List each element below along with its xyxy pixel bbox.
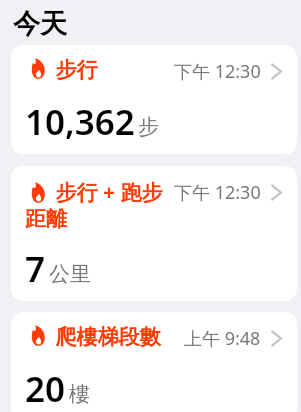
staticText: *步行 + 跑步 距離: [25, 178, 170, 233]
staticText: 7: [25, 245, 46, 293]
staticText: 步: [138, 114, 159, 140]
staticText: 10,362: [25, 98, 135, 146]
button[interactable]: *步行: [11, 45, 297, 154]
staticText: 樓: [69, 381, 90, 407]
staticText: 上午 9:48: [184, 326, 261, 351]
staticText: 下午 12:30: [174, 180, 261, 205]
staticText: 今天: [13, 7, 67, 41]
button[interactable]: *爬樓梯段數: [11, 312, 297, 412]
staticText: 下午 12:30: [174, 59, 261, 84]
staticText: 公里: [49, 261, 91, 287]
staticText: *爬樓梯段數: [25, 324, 180, 350]
staticText: 20: [25, 365, 66, 412]
other: Show details: [270, 183, 283, 202]
staticText: *步行: [25, 57, 170, 83]
button[interactable]: *步行 + 跑步 距離: [11, 166, 297, 301]
other: Show details: [270, 329, 283, 348]
other: Show details: [270, 62, 283, 81]
